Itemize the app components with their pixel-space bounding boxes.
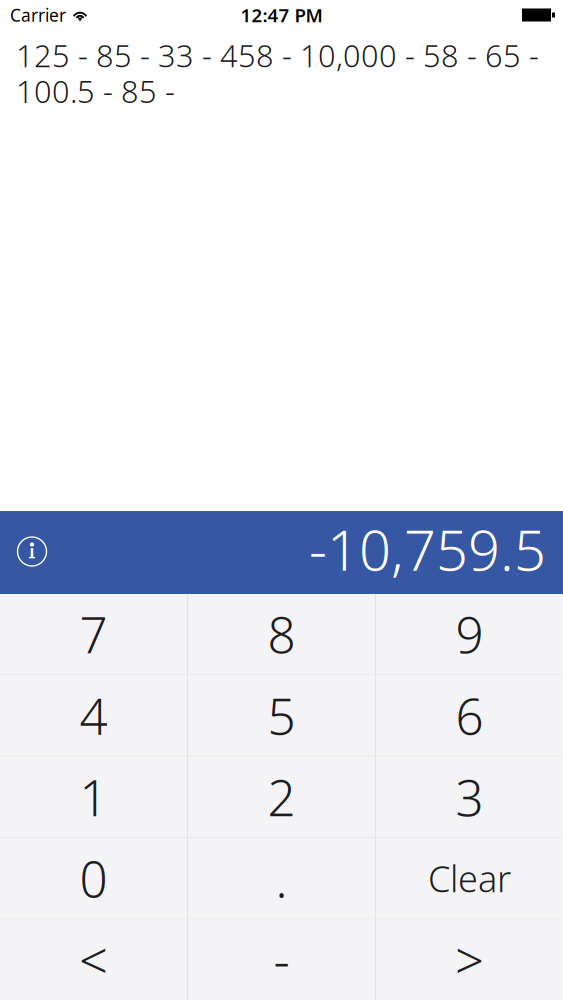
button[interactable]: Clear — [376, 838, 563, 919]
button[interactable]: 7 — [0, 594, 187, 674]
button[interactable]: < — [0, 920, 187, 1000]
button[interactable]: - — [188, 920, 375, 1000]
staticText: 5 — [267, 683, 295, 748]
staticText: 8 — [267, 601, 295, 667]
staticText: 4 — [79, 683, 107, 748]
button[interactable]: 4 — [0, 675, 187, 756]
button[interactable]: 6 — [376, 675, 563, 756]
staticText: -10,759.5 — [309, 512, 546, 586]
button[interactable]: Info — [0, 525, 57, 579]
staticText: 12:47 PM — [240, 3, 322, 27]
button[interactable]: 8 — [188, 594, 375, 674]
staticText: - — [273, 926, 289, 993]
staticText: 9 — [455, 601, 483, 667]
staticText: Clear — [428, 854, 511, 902]
button[interactable]: > — [376, 920, 563, 1000]
button[interactable]: 5 — [188, 675, 375, 756]
staticText: 7 — [79, 601, 107, 667]
button[interactable]: 3 — [376, 757, 563, 837]
button[interactable]: 1 — [0, 757, 187, 837]
staticText: 6 — [455, 683, 483, 748]
button[interactable]: 9 — [376, 594, 563, 674]
staticText: 3 — [455, 764, 483, 830]
button[interactable]: 0 — [0, 838, 187, 919]
staticText: > — [455, 926, 484, 993]
staticText: 1 — [79, 764, 107, 830]
button[interactable]: 2 — [188, 757, 375, 837]
staticText: < — [79, 926, 108, 993]
button[interactable]: . — [188, 838, 375, 919]
staticText: 125 - 85 - 33 - 458 - 10,000 - 58 - 65 -… — [16, 35, 539, 111]
staticText: 0 — [79, 846, 107, 911]
staticText: . — [275, 846, 287, 911]
staticText: Carrier — [10, 3, 66, 26]
staticText: 2 — [267, 764, 295, 830]
